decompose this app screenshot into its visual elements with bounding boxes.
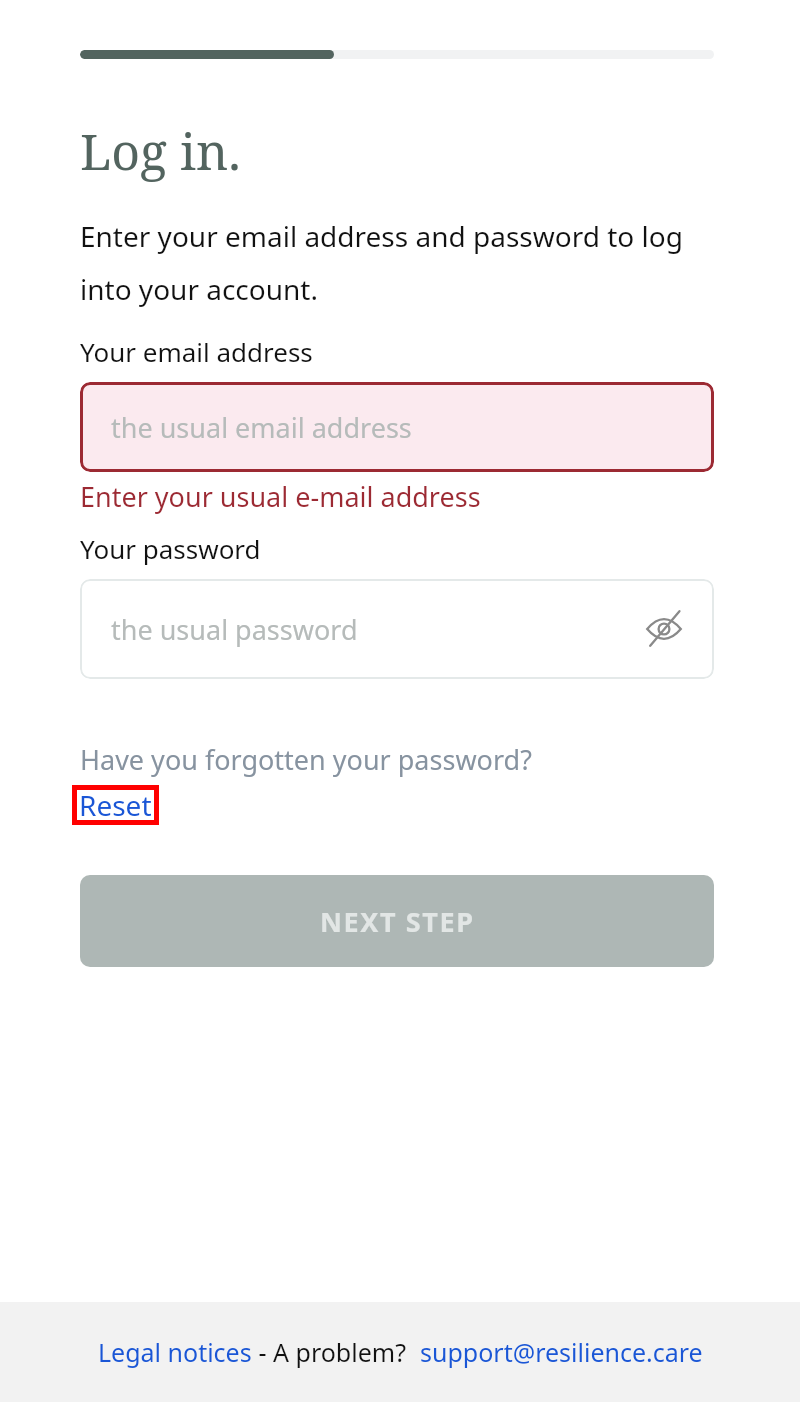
staticText: support@resilience.care [420,1335,703,1369]
staticText: Legal notices [98,1335,252,1369]
button[interactable]: Show password [642,607,686,651]
staticText: the usual email address [111,409,412,446]
staticText: - A problem? [252,1335,420,1369]
staticText: Enter your usual e-mail address [80,478,481,515]
staticText: Have you forgotten your password? [80,741,532,778]
staticText: Log in. [80,117,241,185]
staticText: Reset [79,786,152,824]
button[interactable]: the usual email address [80,382,714,472]
staticText: NEXT STEP [320,903,475,940]
staticText: Your email address [80,334,313,369]
staticText: Enter your email address and password to… [80,217,708,308]
button[interactable]: Reset [72,785,159,825]
button[interactable]: the usual password [80,579,714,679]
button[interactable]: Legal notices [98,1335,252,1369]
staticText: Your password [80,531,261,566]
button[interactable]: support@resilience.care [420,1335,703,1369]
button[interactable]: NEXT STEP [80,875,714,967]
staticText: the usual password [111,611,358,648]
